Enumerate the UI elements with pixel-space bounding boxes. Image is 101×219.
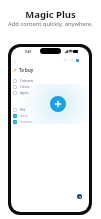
button[interactable]: Apples (13, 90, 59, 96)
staticText: Bread (20, 114, 28, 118)
staticText: Add content quickly, anywhere. (8, 20, 93, 28)
staticText: Cheese (20, 85, 30, 89)
button[interactable]: Redo (69, 57, 76, 64)
staticText: 9:41 (25, 50, 32, 54)
button[interactable]: Undo (62, 57, 69, 64)
button[interactable]: Profile (74, 57, 81, 64)
staticText: Tomatoes (20, 120, 33, 124)
staticText: To buy (19, 67, 34, 73)
button[interactable]: Milk (13, 107, 59, 113)
staticText: Apples (20, 91, 29, 95)
button[interactable]: Back (11, 58, 18, 65)
button[interactable]: Croissants (13, 78, 59, 84)
button[interactable]: Cheese (13, 84, 59, 90)
button[interactable]: Add item (77, 194, 82, 199)
staticText: Croissants (20, 79, 34, 83)
button[interactable]: Add (50, 96, 66, 112)
button[interactable]: Tomatoes (13, 119, 59, 125)
button[interactable]: Bread (13, 113, 59, 119)
staticText: Magic Plus (25, 8, 76, 21)
staticText: Milk (20, 108, 26, 112)
